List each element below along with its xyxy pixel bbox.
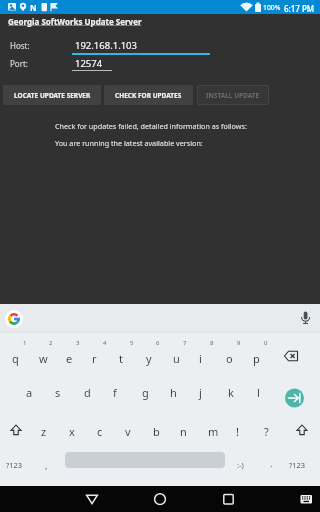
staticText: 4 <box>103 339 107 347</box>
button[interactable]: v <box>125 424 131 439</box>
button[interactable]: i <box>199 351 202 366</box>
button[interactable]: k <box>228 385 234 400</box>
button[interactable]: z <box>41 424 47 439</box>
button[interactable]: CHECK FOR UPDATES <box>104 85 193 105</box>
button[interactable]: c <box>97 424 103 439</box>
button[interactable]: f <box>113 385 117 400</box>
button[interactable]: w <box>39 351 48 366</box>
button[interactable]: h <box>170 385 177 400</box>
button[interactable]: g <box>142 385 149 400</box>
button[interactable]: r <box>92 351 97 366</box>
button[interactable]: 12574 <box>75 57 103 70</box>
staticText: Host: <box>10 40 30 51</box>
button[interactable]: INSTALL UPDATE <box>197 85 269 105</box>
staticText: :-) <box>237 460 244 470</box>
button[interactable] <box>80 488 104 510</box>
staticText: N <box>30 2 37 13</box>
button[interactable] <box>216 488 240 510</box>
staticText: Port: <box>10 58 29 69</box>
button[interactable]: ! <box>236 424 239 439</box>
staticText: You are running the latest available ver… <box>55 138 203 148</box>
button[interactable]: b <box>153 424 160 439</box>
button[interactable]: m <box>208 424 219 439</box>
button[interactable]: d <box>84 385 91 400</box>
staticText: 3 <box>76 339 80 347</box>
button[interactable]: p <box>253 351 260 366</box>
button[interactable]: q <box>12 351 19 366</box>
staticText: , <box>45 459 48 471</box>
button[interactable]: u <box>173 351 180 366</box>
staticText: 6 <box>156 339 160 347</box>
staticText: INSTALL UPDATE <box>206 91 260 100</box>
staticText: 7 <box>183 339 187 347</box>
button[interactable]: ?123 <box>6 460 23 470</box>
button[interactable]: e <box>66 351 73 366</box>
staticText: 2 <box>49 339 53 347</box>
button[interactable]: t <box>119 351 123 366</box>
staticText: 100% <box>263 3 281 12</box>
button[interactable]: a <box>26 385 33 400</box>
button[interactable] <box>296 488 316 510</box>
staticText: 6:17 PM <box>284 3 315 14</box>
button[interactable]: x <box>69 424 75 439</box>
staticText: Georgia SoftWorks Update Server <box>8 16 142 27</box>
staticText: 0 <box>264 339 268 347</box>
button[interactable]: LOCATE UPDATE SERVER <box>3 85 101 105</box>
button[interactable]: s <box>55 385 61 400</box>
button[interactable]: o <box>226 351 233 366</box>
button[interactable] <box>0 304 320 332</box>
button[interactable] <box>148 488 172 510</box>
button[interactable]: l <box>257 385 260 400</box>
staticText: Check for updates failed, detailed infor… <box>55 121 247 131</box>
button[interactable]: ? <box>264 424 269 439</box>
staticText: 1 <box>23 339 27 347</box>
staticText: . <box>270 457 273 469</box>
button[interactable]: ?123 <box>289 460 306 470</box>
staticText: 9 <box>237 339 241 347</box>
staticText: 8 <box>210 339 214 347</box>
staticText: 5 <box>130 339 134 347</box>
button[interactable]: y <box>146 351 152 366</box>
button[interactable]: j <box>199 385 202 400</box>
button[interactable]: 192.168.1.103 <box>75 39 137 52</box>
staticText: CHECK FOR UPDATES <box>115 91 182 100</box>
button[interactable]: n <box>180 424 187 439</box>
staticText: LOCATE UPDATE SERVER <box>14 91 91 100</box>
